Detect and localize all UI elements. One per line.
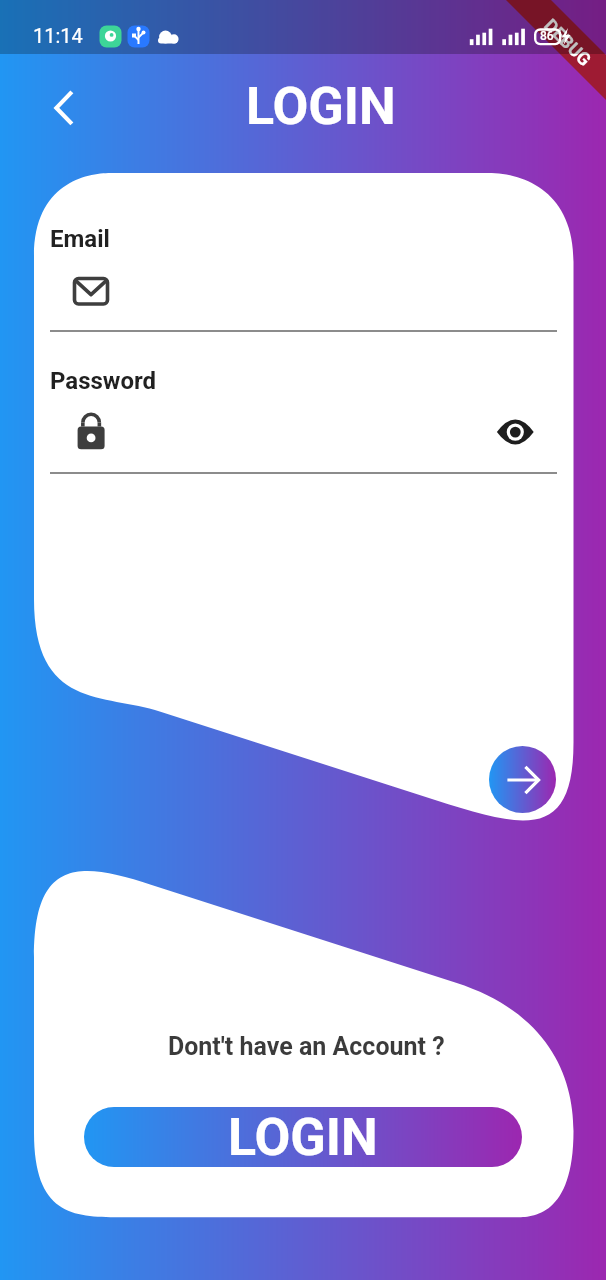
- button[interactable]: LOGIN: [84, 1107, 522, 1167]
- button[interactable]: Continue: [489, 746, 556, 813]
- staticText: Email: [50, 225, 110, 253]
- staticText: DEBUG: [540, 15, 596, 70]
- staticText: Dont't have an Account ?: [168, 1032, 445, 1061]
- staticText: LOGIN: [228, 1107, 378, 1167]
- staticText: 86: [540, 29, 554, 43]
- staticText: 11:14: [33, 24, 83, 47]
- staticText: Password: [50, 367, 157, 395]
- button[interactable]: Back: [39, 83, 89, 133]
- staticText: LOGIN: [246, 76, 396, 137]
